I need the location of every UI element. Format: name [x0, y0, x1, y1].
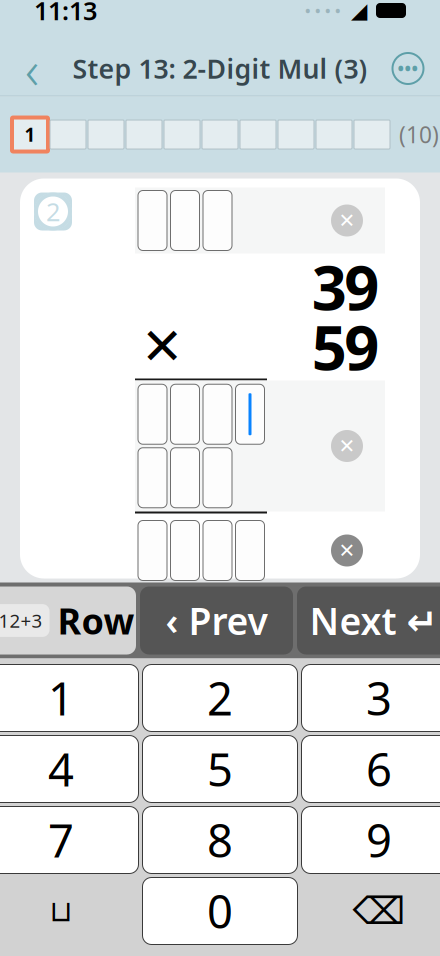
staticText: 3: [366, 668, 392, 728]
staticText: 6: [366, 739, 392, 799]
staticText: 3: [312, 246, 347, 327]
button[interactable]: Back: [9, 45, 55, 91]
staticText: ✕: [141, 318, 183, 375]
staticText: • • • •: [305, 1, 341, 20]
staticText: 9: [344, 306, 379, 387]
button[interactable]: More options: [385, 45, 431, 91]
staticText: ‹ Prev: [165, 596, 267, 645]
button[interactable]: Clear row: [331, 430, 363, 462]
button[interactable]: 3: [301, 664, 440, 731]
staticText: ⌫: [352, 890, 405, 932]
button[interactable]: Delete: [301, 877, 440, 944]
staticText: ✕: [338, 209, 355, 232]
button[interactable]: 5: [142, 735, 297, 802]
staticText: 11:13: [34, 0, 97, 27]
button[interactable]: 7: [0, 806, 138, 873]
staticText: 1: [24, 122, 35, 147]
staticText: (10): [399, 119, 439, 149]
button[interactable]: 1: [0, 664, 138, 731]
staticText: ‹: [25, 33, 39, 104]
staticText: 2: [207, 668, 233, 728]
button[interactable]: Clear row: [331, 204, 363, 236]
staticText: 12+3: [0, 608, 42, 633]
staticText: 9: [366, 810, 392, 870]
button[interactable]: Space: [0, 877, 138, 944]
staticText: 5: [207, 739, 233, 799]
staticText: ◢: [351, 0, 367, 23]
staticText: 7: [48, 810, 74, 870]
button[interactable]: 2: [142, 664, 297, 731]
staticText: ⊔: [49, 894, 72, 928]
staticText: Next ↵: [309, 596, 437, 645]
button[interactable]: 6: [301, 735, 440, 802]
staticText: 2: [46, 195, 60, 228]
button[interactable]: 0: [142, 877, 297, 944]
button[interactable]: ‹ Prev: [140, 586, 293, 654]
button[interactable]: 9: [301, 806, 440, 873]
staticText: 8: [207, 810, 233, 870]
staticText: 9: [344, 246, 379, 327]
staticText: Step 13: 2-Digit Mul (3): [72, 51, 367, 86]
button[interactable]: 8: [142, 806, 297, 873]
button[interactable]: 12+3: [0, 586, 136, 654]
staticText: Row: [57, 597, 134, 644]
staticText: 1: [48, 668, 74, 728]
staticText: ✕: [338, 435, 355, 457]
staticText: 0: [207, 881, 233, 941]
button[interactable]: Clear answer: [331, 534, 363, 566]
staticText: •••: [397, 57, 418, 80]
staticText: 4: [48, 739, 74, 799]
staticText: 5: [312, 306, 347, 387]
button[interactable]: Next ↵: [297, 586, 440, 654]
staticText: ✕: [338, 539, 355, 562]
button[interactable]: 4: [0, 735, 138, 802]
